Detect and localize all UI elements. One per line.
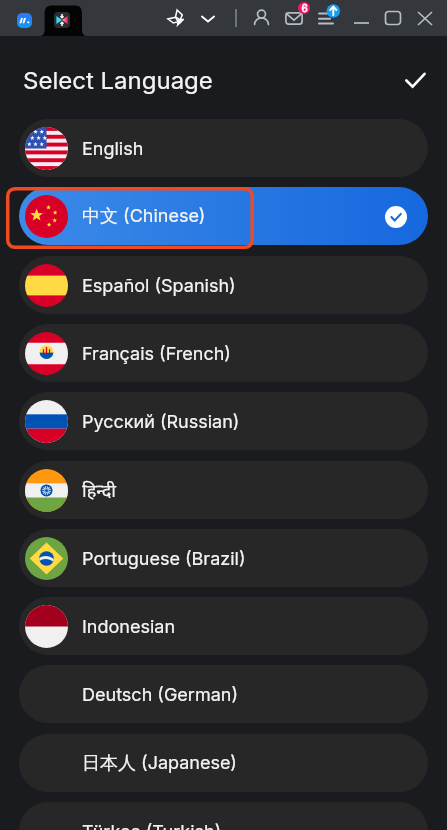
button[interactable]: Español (Spanish) xyxy=(19,256,428,314)
button[interactable]: English xyxy=(19,119,428,177)
staticText: Select Language xyxy=(23,66,213,95)
button[interactable]: Confirm xyxy=(400,65,430,95)
button[interactable]: Upload menu xyxy=(318,8,340,28)
button[interactable]: App logo xyxy=(17,13,32,28)
staticText: Deutsch (German) xyxy=(82,684,238,706)
staticText: Русский (Russian) xyxy=(82,411,240,433)
staticText: 中文 (Chinese) xyxy=(82,205,206,228)
staticText: Portuguese (Brazil) xyxy=(82,548,246,570)
button[interactable]: 中文 (Chinese) xyxy=(19,187,428,245)
button[interactable]: Maximize xyxy=(383,8,403,28)
button[interactable]: Deutsch (German) xyxy=(19,665,428,723)
button[interactable]: हिन्दी xyxy=(19,461,428,519)
button[interactable]: Account xyxy=(251,8,272,29)
button[interactable]: Русский (Russian) xyxy=(19,392,428,450)
staticText: English xyxy=(82,138,144,160)
staticText: 6 xyxy=(301,2,308,14)
button[interactable]: Portuguese (Brazil) xyxy=(19,529,428,587)
staticText: Türkçe (Turkish) xyxy=(82,821,222,830)
button[interactable]: Mail xyxy=(285,12,303,25)
button[interactable]: Français (French) xyxy=(19,324,428,382)
staticText: Français (French) xyxy=(82,343,231,365)
button[interactable]: Indonesian xyxy=(19,597,428,655)
button[interactable]: Expand xyxy=(200,10,216,26)
button[interactable]: 日本人 (Japanese) xyxy=(19,734,428,792)
button[interactable]: Türkçe (Turkish) xyxy=(19,802,428,830)
button[interactable]: Browser tab xyxy=(40,5,87,36)
staticText: हिन्दी xyxy=(82,478,117,503)
button[interactable]: Close xyxy=(415,8,435,28)
staticText: Indonesian xyxy=(82,616,176,638)
button[interactable]: Minimize xyxy=(352,8,372,28)
staticText: Español (Spanish) xyxy=(82,275,236,297)
staticText: 日本人 (Japanese) xyxy=(82,752,237,775)
button[interactable]: Butterfly xyxy=(165,7,187,29)
